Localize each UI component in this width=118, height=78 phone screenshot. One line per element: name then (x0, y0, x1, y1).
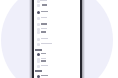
other: Setting (37, 43, 40, 46)
other: Setting (37, 28, 40, 31)
button[interactable] (34, 26, 80, 31)
button[interactable] (34, 9, 80, 14)
button[interactable] (34, 21, 80, 26)
button[interactable] (34, 56, 80, 61)
other: Setting (37, 75, 40, 78)
other: Setting (37, 4, 40, 7)
button[interactable] (34, 2, 80, 7)
button[interactable] (34, 29, 80, 34)
other: Setting (37, 53, 40, 56)
button[interactable] (34, 51, 80, 56)
other: Setting (37, 0, 40, 3)
button[interactable] (34, 63, 80, 68)
button[interactable] (34, 58, 80, 63)
button[interactable] (34, 41, 80, 46)
button[interactable] (34, 15, 80, 20)
other: Setting (37, 23, 40, 26)
other: Setting (37, 38, 40, 41)
other: Setting (37, 31, 40, 34)
button[interactable] (34, 73, 80, 78)
button[interactable] (34, 68, 80, 73)
button[interactable] (34, 36, 80, 41)
other: Setting (37, 65, 40, 68)
button[interactable] (34, 47, 80, 52)
other: Setting (37, 11, 40, 14)
button[interactable] (34, 0, 80, 3)
other: Setting (37, 17, 40, 20)
